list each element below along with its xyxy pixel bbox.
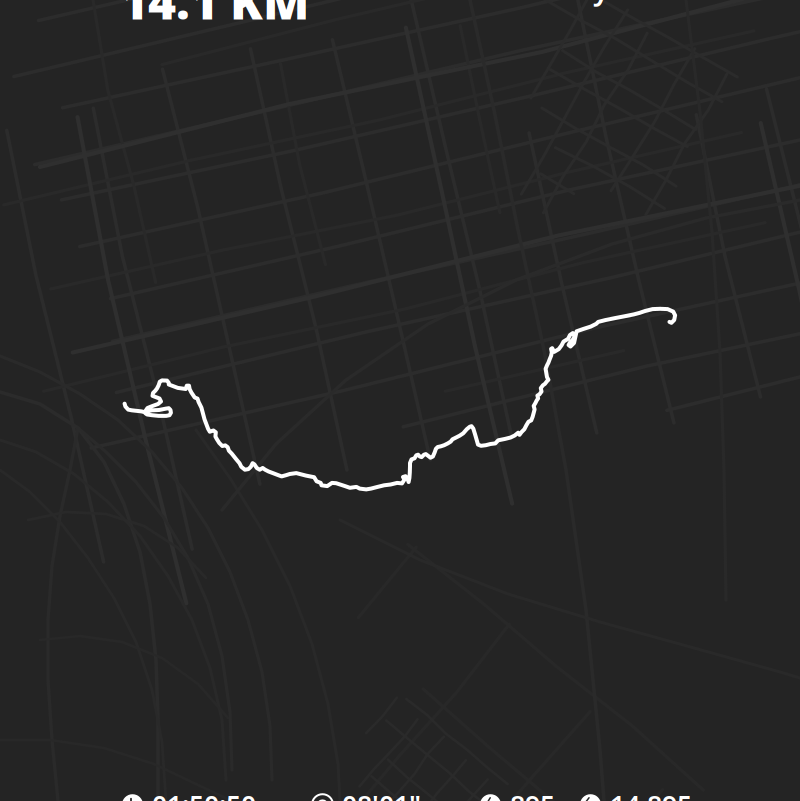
staticText: 14.1 KM	[120, 0, 309, 33]
staticText: by user	[575, 0, 680, 8]
staticText: 895	[510, 787, 555, 801]
staticText: 08'01"	[342, 787, 421, 801]
staticText: 14.895	[610, 787, 692, 801]
staticText: 01:50:50	[152, 787, 256, 801]
